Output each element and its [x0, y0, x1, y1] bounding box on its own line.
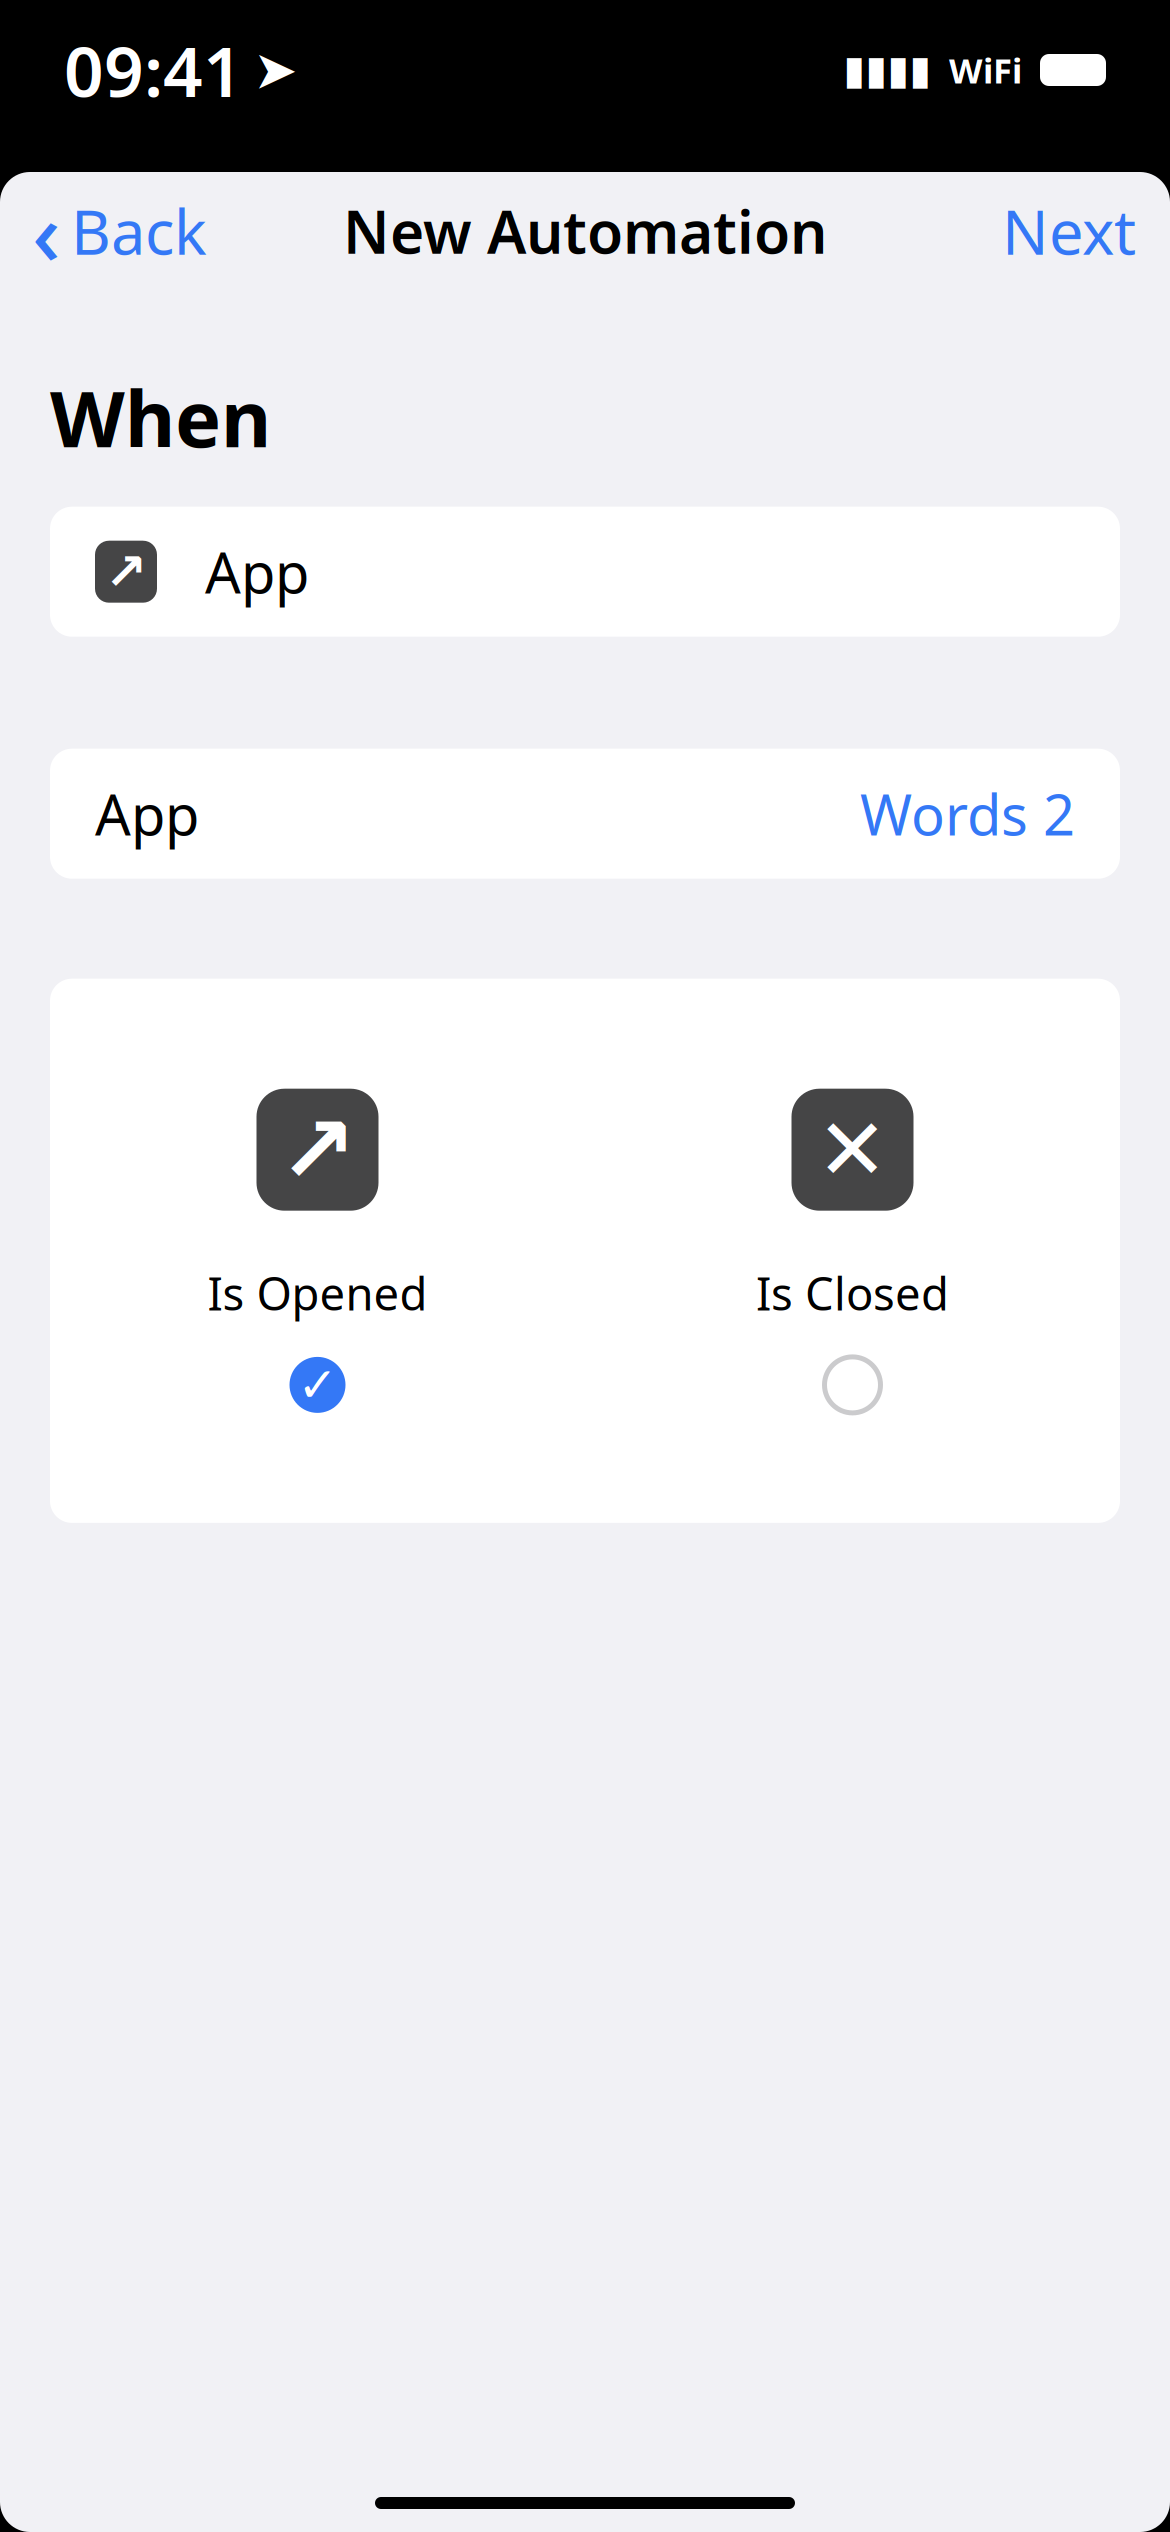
staticText: App [205, 534, 309, 609]
staticText: Is Opened [207, 1263, 427, 1323]
staticText: Words 2 [860, 776, 1075, 851]
staticText: When [50, 366, 271, 469]
button[interactable]: ✕ [585, 1089, 1120, 1413]
staticText: ↗ [105, 543, 147, 600]
staticText: ↗ [278, 1097, 356, 1203]
button[interactable]: ↗ [50, 507, 1120, 637]
staticText: New Automation [343, 192, 827, 270]
button[interactable]: ↗ [50, 1089, 585, 1413]
staticText: ➤ [253, 40, 298, 100]
staticText: App [95, 776, 199, 851]
staticText: Back [71, 190, 207, 272]
staticText: ✕ [816, 1101, 888, 1198]
button[interactable]: Next [968, 176, 1170, 286]
button[interactable]: App [50, 749, 1120, 879]
staticText: WiFi [949, 47, 1022, 93]
staticText: ‹ [32, 173, 61, 289]
button[interactable]: ‹ [0, 159, 239, 303]
staticText: ▮▮▮▮ [843, 47, 931, 93]
staticText: 09:41 [64, 24, 243, 116]
staticText: Is Closed [756, 1263, 949, 1323]
staticText: ✓ [297, 1358, 337, 1412]
staticText: Next [1002, 190, 1136, 272]
